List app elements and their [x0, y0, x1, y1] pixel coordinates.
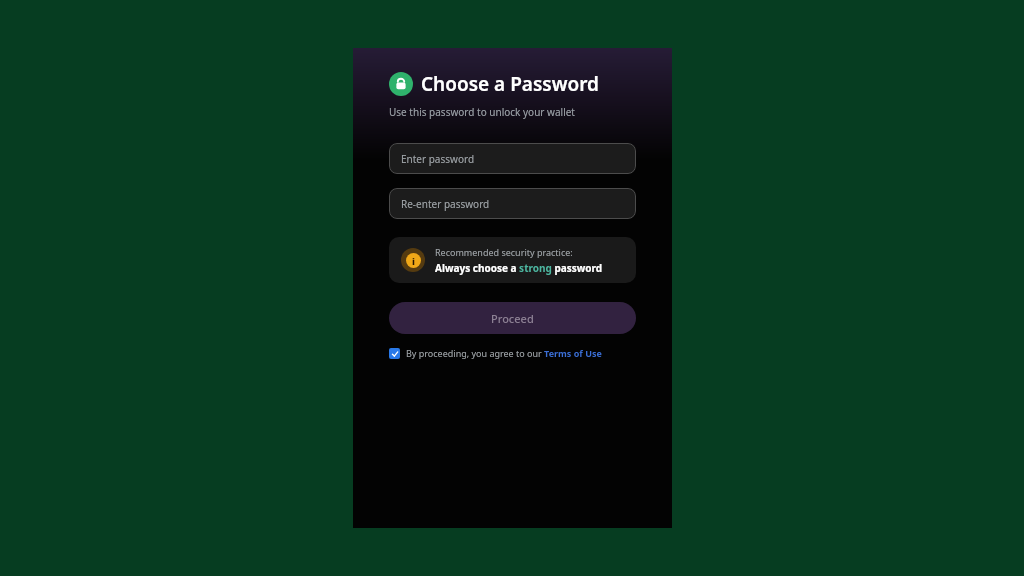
staticText: Use this password to unlock your wallet: [389, 105, 575, 119]
staticText: Enter password: [401, 152, 475, 166]
other: Lock: [389, 72, 413, 96]
staticText: Proceed: [491, 311, 534, 326]
button[interactable]: Proceed: [389, 302, 636, 334]
staticText: Choose a Password: [421, 71, 599, 97]
staticText: Always choose a strong password: [435, 261, 603, 275]
staticText: i: [412, 255, 415, 267]
button[interactable]: By proceeding, you agree to our Terms of…: [389, 347, 602, 359]
staticText: By proceeding, you agree to our Terms of…: [406, 347, 602, 359]
button[interactable]: i: [389, 237, 636, 283]
button[interactable]: Re-enter password: [389, 188, 636, 219]
button[interactable]: Enter password: [389, 143, 636, 174]
staticText: Re-enter password: [401, 197, 490, 211]
staticText: Recommended security practice:: [435, 246, 573, 258]
